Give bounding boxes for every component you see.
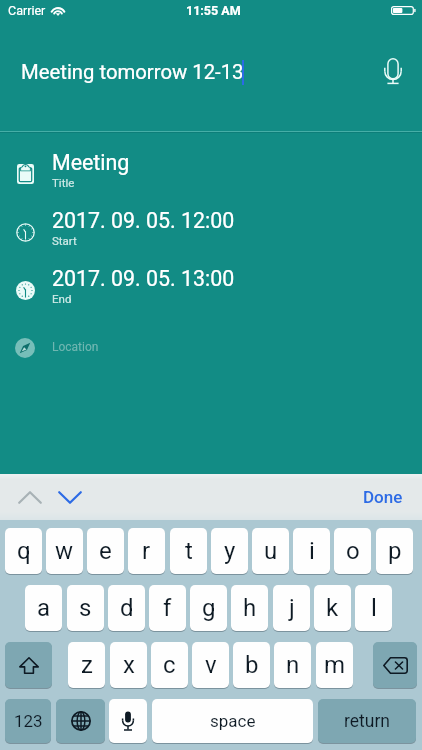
button[interactable]: Shift (5, 642, 52, 688)
staticText: 2017. 09. 05. 13:00 (52, 266, 235, 291)
button[interactable]: u (252, 528, 289, 574)
staticText: c (163, 651, 176, 679)
staticText: x (123, 651, 135, 679)
button[interactable]: 123 (5, 699, 51, 743)
button[interactable]: e (87, 528, 124, 574)
staticText: Carrier (8, 3, 46, 18)
button[interactable]: r (128, 528, 165, 574)
staticText: n (286, 651, 300, 679)
staticText: k (326, 594, 339, 622)
staticText: Location (52, 340, 99, 354)
button[interactable]: Meeting (0, 145, 422, 203)
button[interactable]: Dictation (109, 699, 147, 743)
button[interactable]: x (110, 642, 147, 688)
button[interactable]: s (67, 585, 104, 631)
staticText: z (81, 651, 93, 679)
staticText: Start (52, 234, 77, 247)
button[interactable]: a (25, 585, 62, 631)
staticText: space (210, 711, 256, 731)
staticText: 2017. 09. 05. 12:00 (52, 208, 235, 233)
button[interactable]: Switch keyboard (56, 699, 105, 743)
staticText: s (79, 594, 92, 622)
staticText: 11:55 AM (186, 3, 241, 18)
staticText: Meeting (52, 150, 130, 175)
staticText: b (245, 651, 259, 679)
button[interactable]: m (316, 642, 353, 688)
staticText: End (52, 292, 72, 305)
button[interactable]: return (318, 699, 416, 743)
staticText: Meeting tomorrow 12-13 (21, 60, 244, 84)
staticText: l (371, 594, 377, 622)
staticText: j (289, 594, 295, 622)
staticText: Title (52, 176, 75, 189)
staticText: o (346, 537, 360, 565)
button[interactable]: y (211, 528, 248, 574)
button[interactable]: p (376, 528, 413, 574)
staticText: t (185, 537, 193, 565)
button[interactable]: n (274, 642, 311, 688)
button[interactable]: Previous field (8, 474, 52, 520)
button[interactable]: 2017. 09. 05. 12:00 (0, 203, 422, 261)
staticText: h (243, 594, 257, 622)
button[interactable]: j (273, 585, 310, 631)
button[interactable]: 2017. 09. 05. 13:00 (0, 261, 422, 319)
staticText: w (55, 537, 74, 565)
staticText: r (142, 537, 151, 565)
button[interactable]: Next field (48, 474, 92, 520)
button[interactable]: w (46, 528, 83, 574)
button[interactable]: d (108, 585, 145, 631)
button[interactable]: b (233, 642, 270, 688)
staticText: Done (363, 487, 403, 507)
staticText: y (224, 537, 236, 565)
button[interactable]: z (68, 642, 105, 688)
button[interactable]: t (170, 528, 207, 574)
staticText: f (163, 594, 172, 622)
button[interactable]: i (293, 528, 330, 574)
staticText: a (37, 594, 51, 622)
staticText: d (120, 594, 134, 622)
staticText: q (17, 537, 31, 565)
button[interactable]: space (152, 699, 313, 743)
staticText: p (388, 537, 402, 565)
button[interactable]: l (355, 585, 392, 631)
button[interactable]: Done (348, 474, 418, 520)
button[interactable]: Voice input (375, 55, 411, 88)
button[interactable]: v (192, 642, 229, 688)
staticText: g (202, 594, 216, 622)
staticText: e (99, 537, 112, 565)
button[interactable]: k (314, 585, 351, 631)
button[interactable]: o (334, 528, 371, 574)
button[interactable]: h (231, 585, 268, 631)
button[interactable]: g (190, 585, 227, 631)
button[interactable]: c (151, 642, 188, 688)
button[interactable]: Backspace (373, 642, 417, 688)
button[interactable]: f (149, 585, 186, 631)
staticText: u (264, 537, 278, 565)
staticText: return (344, 711, 391, 732)
staticText: v (205, 651, 217, 679)
staticText: i (309, 537, 315, 565)
button[interactable]: q (5, 528, 42, 574)
staticText: 123 (14, 711, 43, 731)
staticText: m (324, 651, 346, 679)
button[interactable]: Location (0, 319, 422, 377)
